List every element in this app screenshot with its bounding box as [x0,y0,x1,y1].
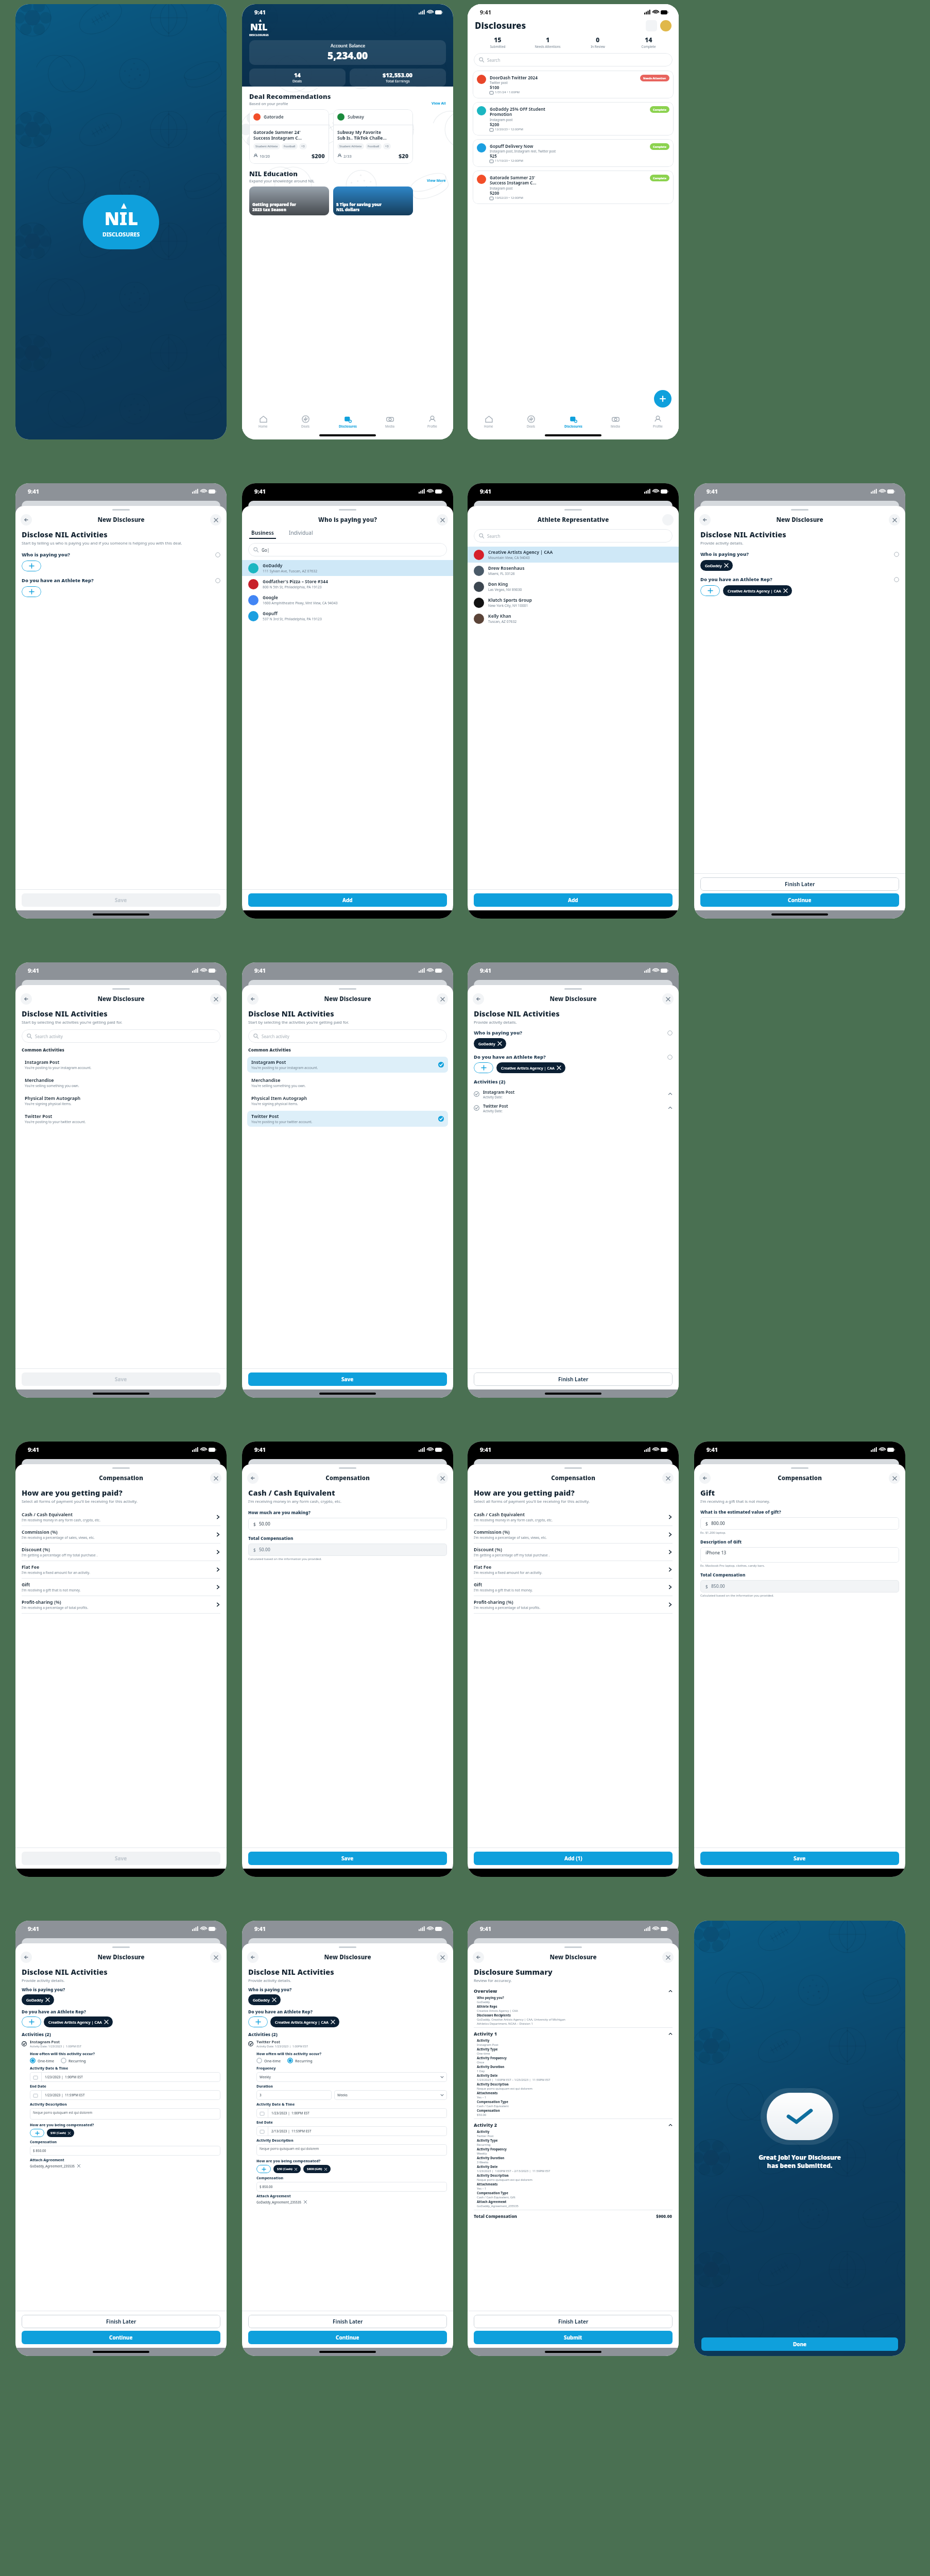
button[interactable]: Individual [287,529,314,539]
button[interactable]: Add [248,2016,268,2027]
button[interactable]: Neque porro quisquam est qui dolorem [256,2144,447,2156]
button[interactable]: Continue [248,2331,447,2344]
button[interactable]: Weeks [334,2090,447,2100]
button[interactable]: GoDaddy [474,1038,506,1049]
button[interactable]: Back [699,1472,711,1484]
button[interactable]: Close [662,993,674,1005]
button[interactable]: $50 (Cash) [273,2165,301,2173]
button[interactable]: Close [662,1472,674,1484]
button[interactable]: Add [22,2016,41,2027]
button[interactable]: Add [22,561,41,571]
button[interactable]: Physical Item Autograph [247,1093,448,1109]
button[interactable]: Subway [333,109,413,164]
button[interactable]: Gatorade Summer 23' Success Instagram C… [473,171,674,204]
button[interactable]: Finish Later [474,2315,673,2328]
button[interactable]: Back [473,993,484,1005]
button[interactable]: Creative Artists Agency | CAA [44,2016,113,2027]
button[interactable]: Profit-sharing (%) [468,1596,679,1613]
button[interactable]: Commission (%) [15,1526,227,1543]
button[interactable]: Google [242,592,453,608]
button[interactable]: New disclosure [654,390,671,408]
button[interactable]: Finish Later [248,2315,447,2328]
button[interactable]: Instagram Post [21,1057,221,1073]
button[interactable]: Save [22,1852,220,1865]
button[interactable]: 2/13/2023 | 11:59PM EST [256,2126,447,2136]
button[interactable]: Search [474,529,673,543]
button[interactable]: Add [22,586,41,597]
button[interactable]: Gopuff Delivery Now [473,139,674,167]
button[interactable]: $ [248,1544,447,1556]
button[interactable]: Back [473,1952,484,1963]
button[interactable]: 1/23/2023 | 1:00PM EST [30,2072,220,2082]
button[interactable]: $12,553.00 [350,69,446,87]
button[interactable]: Save [248,1372,447,1386]
button[interactable]: Weekly [256,2072,447,2082]
button[interactable]: $50 (Cash) [47,2129,74,2137]
button[interactable]: $ 850.00 [30,2146,220,2156]
button[interactable]: Disclosures [326,412,369,431]
button[interactable]: Disclosures [552,412,594,431]
button[interactable]: Filter [646,20,657,31]
button[interactable]: Back [699,514,711,526]
button[interactable]: 1 [523,36,573,48]
button[interactable]: Cash / Cash Equivalent [15,1509,227,1526]
button[interactable]: Profit-sharing (%) [15,1596,227,1613]
button[interactable]: Close [437,1952,448,1963]
button[interactable]: Merchandise [21,1075,221,1091]
button[interactable]: Flat Fee [468,1561,679,1578]
button[interactable]: Discount (%) [468,1544,679,1561]
button[interactable]: Twitter Post [247,1111,448,1127]
button[interactable]: Business [249,529,276,539]
button[interactable]: Commission (%) [468,1526,679,1543]
button[interactable]: Godfather's Pizza – Store #344 [242,576,453,592]
button[interactable]: 3 [256,2090,332,2100]
button[interactable]: Close [210,1472,221,1484]
button[interactable]: 5 Tips for saving your NIL dollars [333,187,413,215]
button[interactable]: Neque porro quisquam est qui dolorem [30,2108,220,2120]
button[interactable]: Profile [636,412,679,431]
button[interactable]: 1/23/2023 | 1:00PM EST [256,2108,447,2118]
button[interactable]: Klutch Sports Group [468,595,679,611]
button[interactable]: Gatorade [249,109,329,164]
button[interactable]: Go| [248,543,447,556]
button[interactable]: Gift [15,1579,227,1596]
button[interactable]: GoDaddy [242,560,453,576]
button[interactable]: Don King [468,579,679,595]
button[interactable]: GoDaddy [700,560,733,571]
button[interactable]: Close [662,1952,674,1963]
button[interactable]: Deals [284,412,326,431]
button[interactable]: Creative Artists Agency | CAA [723,585,792,596]
button[interactable]: Done [701,2337,898,2351]
button[interactable]: Search activity [248,1029,447,1043]
button[interactable]: DoorDash Twitter 2024 [473,71,674,98]
button[interactable]: Finish Later [22,2315,220,2328]
button[interactable]: Activity 1 [474,2030,673,2037]
button[interactable]: Merchandise [247,1075,448,1091]
button[interactable]: Finish Later [700,877,899,891]
button[interactable]: Search [474,53,673,66]
button[interactable]: Back [21,514,32,526]
button[interactable]: Back [247,1952,259,1963]
button[interactable]: Discount (%) [15,1544,227,1561]
button[interactable]: Physical Item Autograph [21,1093,221,1109]
button[interactable]: Instagram Post [474,1089,673,1099]
button[interactable]: Back [247,993,259,1005]
button[interactable]: 14 [249,69,346,87]
button[interactable]: Close [210,993,221,1005]
button[interactable]: Save [248,1852,447,1865]
button[interactable]: Account Balance [249,40,446,65]
button[interactable]: GoDaddy [248,1994,281,2005]
button[interactable]: Close [437,1472,448,1484]
button[interactable]: $ [700,1517,899,1530]
button[interactable]: Close [437,993,448,1005]
button[interactable]: Cash / Cash Equivalent [468,1509,679,1526]
button[interactable]: Twitter Post [474,1103,673,1113]
button[interactable]: Gift [468,1579,679,1596]
button[interactable]: Add compensation [256,2165,271,2173]
button[interactable]: Flat Fee [15,1561,227,1578]
button[interactable]: Save [22,893,220,907]
button[interactable]: Creative Artists Agency | CAA [496,1062,565,1073]
button[interactable]: Submit [474,2331,673,2344]
button[interactable]: Drew Rosenhaus [468,563,679,579]
button[interactable]: Close [210,1952,221,1963]
